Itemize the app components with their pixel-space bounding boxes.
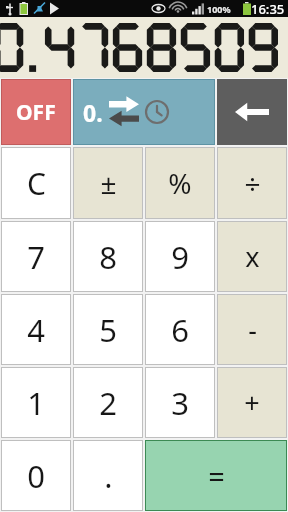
button[interactable]: 0 — [1, 440, 71, 511]
button[interactable]: 6 — [145, 294, 215, 365]
button[interactable]: C — [1, 147, 71, 219]
button[interactable]: 5 — [73, 294, 143, 365]
staticText: ± — [100, 164, 117, 202]
staticText: 5 — [99, 309, 117, 351]
staticText: . — [104, 455, 113, 497]
button[interactable]: 3 — [145, 367, 215, 438]
button[interactable]: . — [73, 440, 143, 511]
button[interactable]: 4 — [1, 294, 71, 365]
button[interactable]: ± — [73, 147, 143, 219]
staticText: % — [168, 164, 192, 202]
staticText: = — [208, 456, 225, 495]
staticText: 8 — [99, 236, 117, 278]
button[interactable]: 2 — [73, 367, 143, 438]
button[interactable]: = — [145, 440, 287, 511]
button[interactable]: 0. — [73, 79, 215, 145]
button[interactable]: + — [217, 367, 287, 438]
button[interactable]: - — [217, 294, 287, 365]
staticText: OFF — [16, 98, 56, 127]
button[interactable]: 9 — [145, 221, 215, 292]
button[interactable]: x — [217, 221, 287, 292]
staticText: 7 — [27, 236, 45, 278]
staticText: 3 — [171, 382, 189, 424]
staticText: C — [27, 163, 46, 204]
button[interactable]: 8 — [73, 221, 143, 292]
button[interactable]: 1 — [1, 367, 71, 438]
staticText: 6 — [171, 309, 189, 351]
staticText: ÷ — [244, 164, 261, 202]
button[interactable]: 7 — [1, 221, 71, 292]
button[interactable]: OFF — [1, 79, 71, 145]
staticText: 2 — [99, 382, 117, 424]
staticText: x — [245, 238, 260, 275]
staticText: 16:35 — [251, 0, 285, 17]
staticText: 100% — [207, 3, 231, 15]
staticText: 0. — [83, 97, 103, 128]
button[interactable]: % — [145, 147, 215, 219]
staticText: + — [244, 384, 260, 421]
staticText: 1 — [27, 382, 45, 424]
staticText: 4 — [27, 309, 45, 351]
staticText: 9 — [171, 236, 189, 278]
button[interactable]: ÷ — [217, 147, 287, 219]
staticText: - — [248, 311, 257, 348]
staticText: 0 — [27, 455, 45, 497]
button[interactable]: Backspace — [217, 79, 287, 145]
